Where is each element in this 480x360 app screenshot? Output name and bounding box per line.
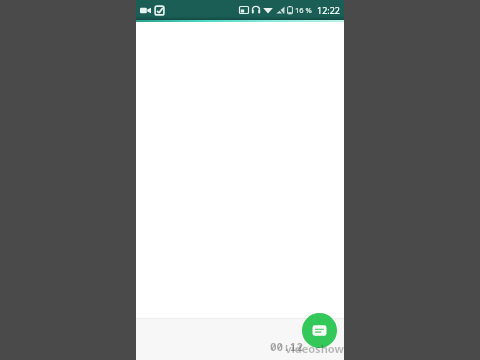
- staticText: 00:12: [270, 339, 303, 354]
- staticText: videoshow: [285, 341, 344, 356]
- staticText: 12:22: [317, 4, 341, 16]
- staticText: 16 %: [295, 5, 312, 15]
- button[interactable]: New message: [302, 313, 337, 348]
